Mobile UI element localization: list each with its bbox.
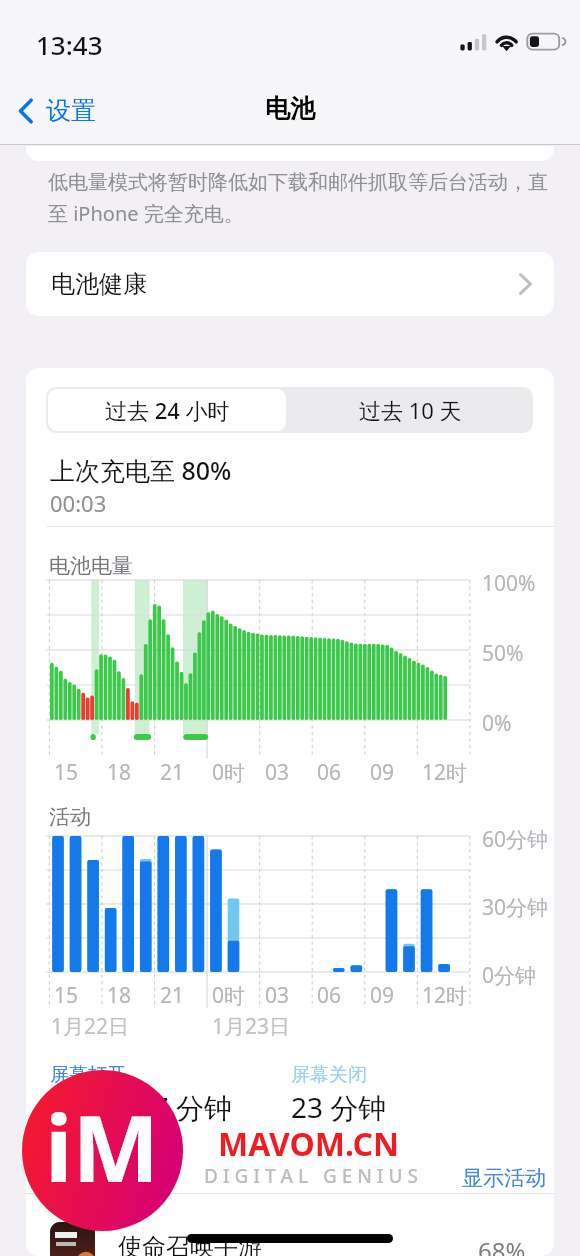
staticText: 屏幕关闭	[291, 1063, 367, 1087]
staticText: 显示活动	[462, 1165, 546, 1191]
staticText: 15	[54, 981, 79, 1010]
button[interactable]: 使命召唤手游	[26, 1194, 554, 1256]
staticText: 设置	[46, 95, 96, 126]
staticText: 03	[265, 758, 290, 787]
staticText: 15	[54, 758, 79, 787]
staticText: 屏幕打开	[50, 1063, 126, 1087]
staticText: 23 分钟	[291, 1088, 387, 1126]
staticText: 过去 24 小时	[105, 395, 230, 425]
staticText: 06	[317, 981, 342, 1010]
staticText: 电池电量	[49, 553, 133, 579]
staticText: 21	[160, 981, 185, 1010]
staticText: 0时	[212, 758, 246, 787]
staticText: 电池	[265, 93, 315, 124]
staticText: 0时	[212, 981, 246, 1010]
staticText: iM	[45, 1084, 160, 1209]
staticText: 100%	[482, 569, 536, 598]
staticText: 13:43	[36, 27, 103, 62]
staticText: 0分钟	[482, 961, 537, 990]
staticText: 18	[107, 981, 132, 1010]
staticText: 50%	[482, 639, 524, 668]
staticText: 09	[370, 758, 395, 787]
staticText: 18	[107, 758, 132, 787]
staticText: 03	[265, 981, 290, 1010]
button[interactable]: 电池健康	[26, 252, 554, 316]
button[interactable]: 设置	[14, 95, 90, 126]
staticText: 06	[317, 758, 342, 787]
staticText: 68%	[478, 1234, 526, 1256]
staticText: 30分钟	[482, 893, 549, 922]
button[interactable]: 过去 24 小时	[48, 389, 286, 431]
staticText: 使命召唤手游	[118, 1232, 262, 1256]
staticText: MAVOM.CN	[218, 1122, 399, 1166]
button[interactable]: 显示活动	[454, 1158, 554, 1198]
staticText: 低电量模式将暂时降低如下载和邮件抓取等后台活动，直 至 iPhone 完全充电。	[48, 170, 553, 227]
staticText: D I G I T A L G E N I U S	[204, 1163, 418, 1189]
staticText: 电池健康	[51, 269, 147, 299]
staticText: 4 小时 17 分钟	[50, 1088, 232, 1126]
staticText: 12时	[422, 981, 468, 1010]
staticText: 活动	[49, 804, 91, 830]
button[interactable]: 过去 10 天	[289, 389, 531, 431]
staticText: 1月23日	[212, 1012, 291, 1041]
staticText: 21	[160, 758, 185, 787]
staticText: 过去 10 天	[359, 395, 462, 425]
staticText: 0%	[482, 709, 512, 738]
staticText: 上次充电至 80%	[50, 453, 232, 487]
staticText: 60分钟	[482, 825, 549, 854]
staticText: 12时	[422, 758, 468, 787]
staticText: 1月22日	[51, 1012, 130, 1041]
staticText: 09	[370, 981, 395, 1010]
staticText: 00:03	[50, 488, 107, 518]
